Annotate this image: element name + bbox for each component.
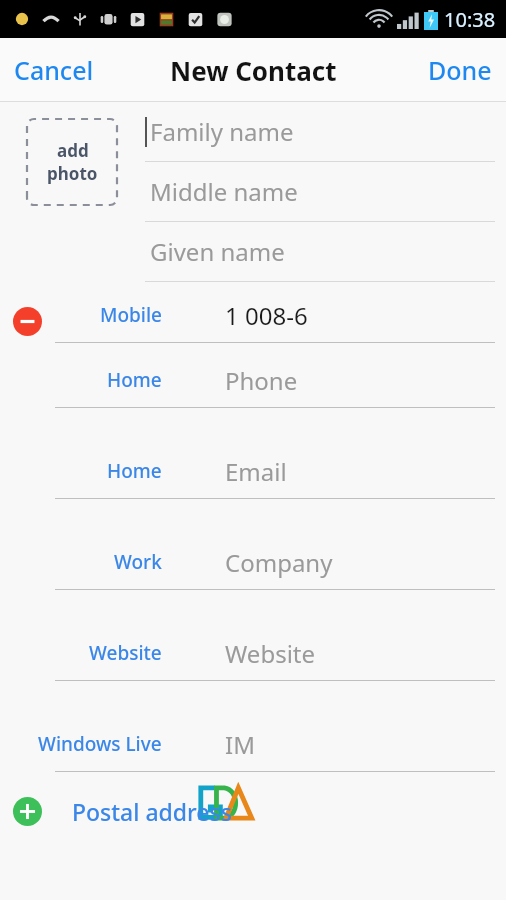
- staticText: Home: [107, 458, 162, 484]
- staticText: Email: [225, 455, 287, 488]
- staticText: Family name: [150, 115, 294, 148]
- button[interactable]: Mobile: [0, 288, 506, 342]
- other: Add field: [9, 793, 45, 829]
- button[interactable]: Home: [0, 444, 506, 498]
- button[interactable]: Given name: [145, 222, 506, 281]
- staticText: Postal address: [72, 796, 232, 827]
- button[interactable]: Windows Live: [0, 717, 506, 771]
- staticText: Phone: [225, 364, 298, 397]
- button[interactable]: Middle name: [145, 162, 506, 221]
- button[interactable]: Website: [0, 626, 506, 680]
- staticText: Windows Live: [38, 731, 162, 757]
- staticText: Given name: [150, 235, 285, 268]
- button[interactable]: Home: [0, 353, 506, 407]
- staticText: Work: [114, 549, 162, 575]
- staticText: Done: [428, 53, 492, 87]
- staticText: Company: [225, 546, 333, 579]
- staticText: photo: [47, 162, 98, 185]
- staticText: 10:38: [444, 6, 496, 33]
- staticText: Mobile: [100, 302, 162, 328]
- staticText: Website: [225, 637, 316, 670]
- staticText: 1 008-6: [225, 299, 308, 332]
- button[interactable]: Work: [0, 535, 506, 589]
- button[interactable]: Add photo: [27, 119, 117, 205]
- staticText: Website: [89, 640, 162, 666]
- staticText: IM: [225, 728, 255, 761]
- staticText: add: [57, 139, 89, 162]
- button[interactable]: Done: [414, 41, 506, 99]
- staticText: Cancel: [14, 53, 94, 87]
- staticText: Middle name: [150, 175, 298, 208]
- staticText: New Contact: [170, 53, 337, 88]
- button[interactable]: Remove field: [9, 303, 45, 339]
- button[interactable]: Family name: [145, 102, 506, 161]
- button[interactable]: Add field: [0, 788, 506, 834]
- button[interactable]: Cancel: [0, 41, 108, 99]
- staticText: Home: [107, 367, 162, 393]
